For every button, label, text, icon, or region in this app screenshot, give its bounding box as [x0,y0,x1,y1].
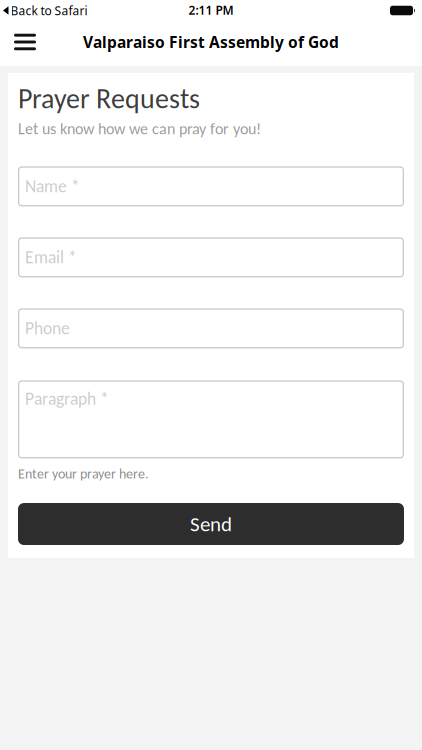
staticText: Send [190,511,232,536]
button[interactable]: Phone [18,308,404,348]
button[interactable]: Back to Safari [0,2,87,22]
button[interactable]: Menu [0,28,36,63]
button[interactable]: Name * [18,166,404,206]
staticText: Paragraph * [25,388,109,409]
staticText: 2:11 PM [188,2,233,18]
staticText: Prayer Requests [18,82,200,115]
staticText: Back to Safari [10,2,87,18]
button[interactable]: Paragraph [18,380,404,458]
staticText: Enter your prayer here. [18,465,149,482]
staticText: Valparaiso First Assembly of God [83,32,339,52]
button[interactable]: Email * [18,237,404,277]
staticText: Let us know how we can pray for you! [18,119,261,138]
button[interactable]: Send [18,503,404,545]
staticText: Email * [25,247,77,268]
staticText: Phone [25,318,70,339]
staticText: Name * [25,176,80,197]
